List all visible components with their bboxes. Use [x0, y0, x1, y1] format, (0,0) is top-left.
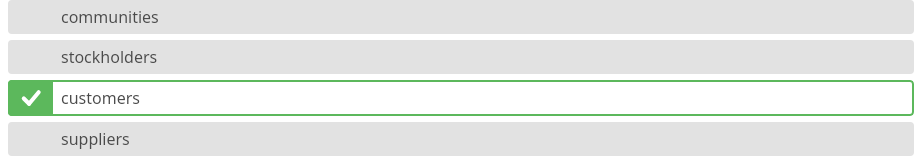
staticText: customers	[61, 87, 140, 109]
button[interactable]: communities	[8, 0, 914, 34]
button[interactable]: Selected	[8, 80, 914, 116]
button[interactable]: stockholders	[8, 40, 914, 74]
staticText: stockholders	[61, 46, 158, 68]
other: Selected	[8, 80, 53, 116]
staticText: suppliers	[61, 128, 130, 150]
button[interactable]: suppliers	[8, 122, 914, 156]
staticText: communities	[61, 6, 159, 28]
